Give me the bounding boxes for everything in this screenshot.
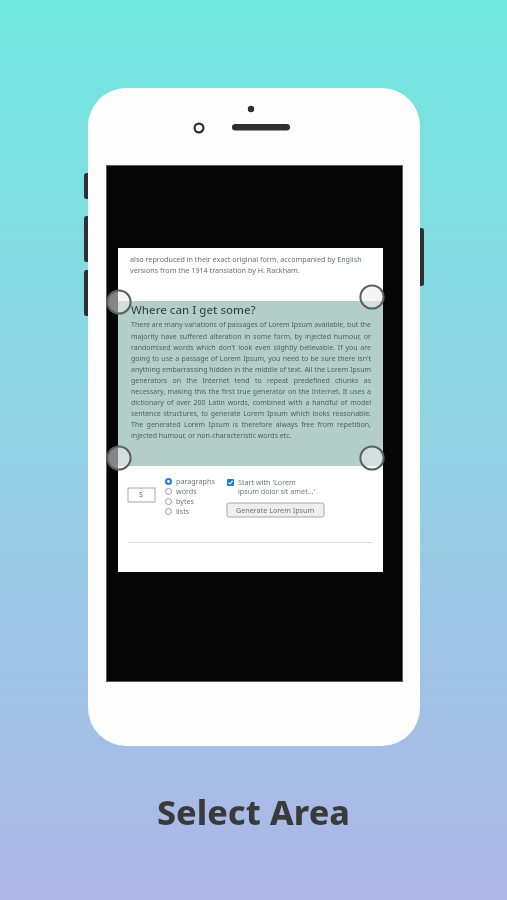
staticText: paragraphs bbox=[176, 476, 215, 486]
staticText: lists bbox=[176, 506, 190, 516]
button[interactable]: Selection handle bbox=[359, 445, 385, 471]
staticText: words bbox=[176, 486, 197, 496]
staticText: also reproduced in their exact original … bbox=[130, 254, 373, 276]
staticText: Start with 'Lorem ipsum dolor sit amet..… bbox=[238, 477, 316, 497]
button[interactable]: Selection handle bbox=[106, 445, 132, 471]
button[interactable]: words bbox=[165, 486, 197, 496]
button[interactable]: Selection handle bbox=[106, 289, 132, 315]
button[interactable]: lists bbox=[165, 506, 190, 516]
button[interactable] bbox=[227, 479, 234, 486]
staticText: 5 bbox=[139, 490, 144, 500]
staticText: Where can I get some? bbox=[131, 302, 256, 318]
button[interactable]: Generate Lorem Ipsum bbox=[227, 503, 324, 517]
staticText: Generate Lorem Ipsum bbox=[236, 505, 315, 515]
button[interactable]: 5 bbox=[128, 488, 155, 502]
button[interactable]: bytes bbox=[165, 496, 195, 506]
staticText: bytes bbox=[176, 496, 195, 506]
button[interactable]: paragraphs bbox=[165, 476, 215, 486]
button[interactable]: Selection handle bbox=[359, 284, 385, 310]
staticText: Select Area bbox=[0, 789, 507, 835]
staticText: There are many variations of passages of… bbox=[131, 320, 371, 440]
